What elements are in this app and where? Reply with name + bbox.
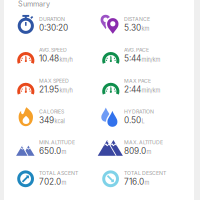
button[interactable]: HYDRATION [101, 101, 196, 132]
staticText: DURATION [39, 16, 65, 22]
button[interactable]: AVG. PACE [101, 40, 196, 71]
staticText: DISTANCE [124, 16, 150, 22]
button[interactable]: MAX SPEED [16, 71, 101, 101]
button[interactable]: MAX. ALTITUDE [101, 132, 196, 163]
staticText: 2:44 [124, 84, 141, 94]
staticText: MAX SPEED [39, 78, 69, 84]
button[interactable]: MIN. ALTITUDE [16, 132, 101, 163]
staticText: km/h [59, 87, 72, 94]
staticText: 5:44 [124, 54, 141, 64]
staticText: HYDRATION [124, 108, 154, 115]
staticText: AVG. SPEED [39, 47, 67, 53]
staticText: 0:30:20 [39, 23, 68, 33]
staticText: 716.0 [124, 177, 144, 187]
staticText: MAX. ALTITUDE [124, 139, 163, 145]
staticText: L [141, 118, 144, 125]
staticText: 21.95 [39, 84, 59, 94]
staticText: CALORIES [39, 108, 64, 115]
staticText: m [144, 179, 149, 186]
staticText: TOTAL ASCENT [39, 170, 78, 176]
button[interactable]: AVG. SPEED [16, 40, 101, 71]
staticText: km [141, 25, 149, 32]
staticText: 5.30 [124, 23, 141, 33]
staticText: min/km [141, 56, 160, 63]
button[interactable]: CALORIES [16, 101, 101, 132]
staticText: 10.48 [39, 54, 59, 64]
button[interactable]: DURATION [16, 9, 101, 40]
button[interactable]: TOTAL ASCENT [16, 163, 101, 194]
staticText: min/km [141, 87, 160, 94]
staticText: 650.0 [39, 146, 61, 156]
staticText: MIN. ALTITUDE [39, 139, 75, 145]
staticText: kcal [54, 118, 64, 125]
staticText: m [61, 149, 66, 155]
staticText: AVG. PACE [124, 47, 149, 53]
button[interactable]: MAX PACE [101, 71, 196, 101]
staticText: MAX PACE [124, 78, 151, 84]
staticText: m [61, 179, 66, 186]
button[interactable]: DISTANCE [101, 9, 196, 40]
staticText: 349 [39, 115, 54, 125]
staticText: TOTAL DESCENT [124, 170, 166, 176]
staticText: 0.50 [124, 115, 141, 125]
staticText: Summary [18, 0, 50, 8]
staticText: km/h [59, 56, 72, 63]
button[interactable]: TOTAL DESCENT [101, 163, 196, 194]
staticText: 809.0 [124, 146, 146, 156]
staticText: m [146, 149, 151, 155]
staticText: 702.0 [39, 177, 61, 187]
